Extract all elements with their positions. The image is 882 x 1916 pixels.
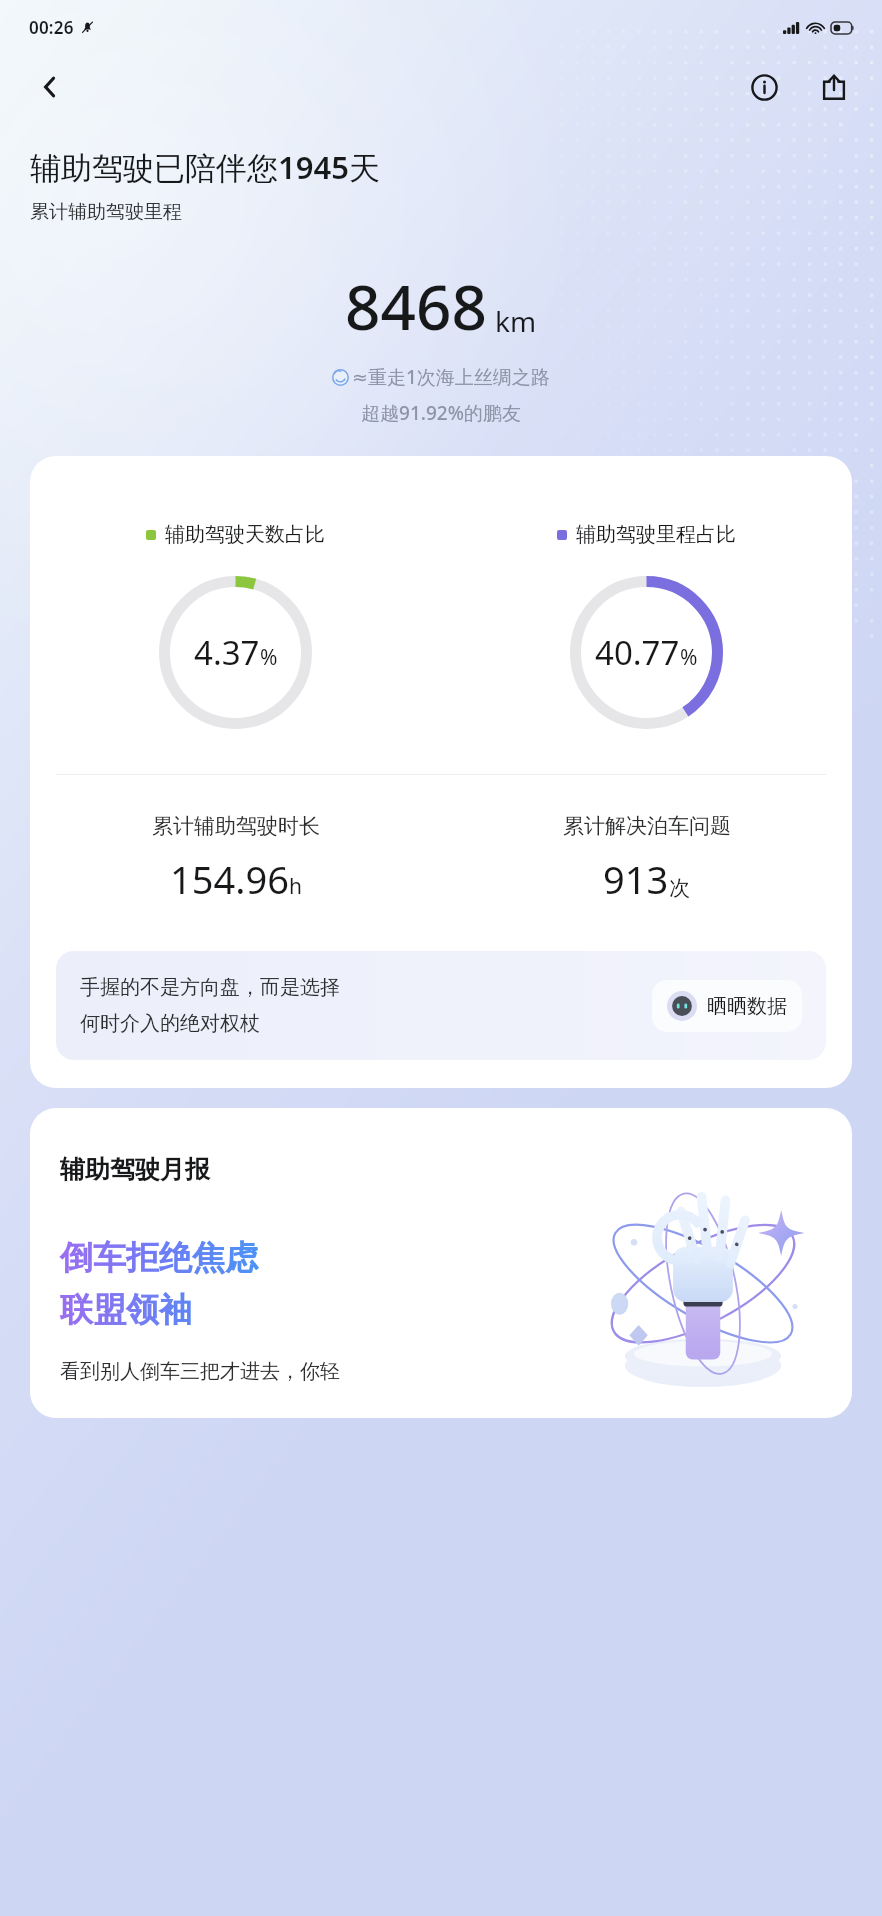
staticText: 次 <box>669 875 690 901</box>
staticText: 何时介入的绝对权杖 <box>80 1011 260 1036</box>
staticText: 00:26 <box>29 16 74 39</box>
staticText: 辅助驾驶月报 <box>60 1154 210 1185</box>
staticText: 40.77 <box>595 630 680 675</box>
staticText: 辅助驾驶里程占比 <box>576 522 736 547</box>
staticText: ≈重走1次海上丝绸之路 <box>352 364 550 390</box>
staticText: 辅助驾驶已陪伴您1945天 <box>30 146 380 188</box>
button[interactable]: 辅助驾驶月报 <box>30 1108 852 1418</box>
staticText: 913 <box>603 853 669 905</box>
staticText: 4.37 <box>194 630 260 675</box>
staticText: 超越91.92%的鹏友 <box>0 400 882 426</box>
staticText: 辅助驾驶天数占比 <box>165 522 325 547</box>
staticText: 累计解决泊车问题 <box>563 813 731 839</box>
staticText: km <box>495 302 537 340</box>
staticText: % <box>680 643 698 672</box>
staticText: h <box>289 872 302 901</box>
staticText: 手握的不是方向盘，而是选择 <box>80 975 340 1000</box>
staticText: 累计辅助驾驶里程 <box>30 200 182 224</box>
button[interactable]: 晒晒数据 <box>652 980 802 1032</box>
button[interactable]: Share <box>810 63 858 111</box>
button[interactable]: Back <box>26 63 74 111</box>
staticText: 晒晒数据 <box>707 994 787 1019</box>
button[interactable]: Info <box>740 63 788 111</box>
staticText: 154.96 <box>170 853 289 905</box>
staticText: 看到别人倒车三把才进去，你轻 <box>60 1359 340 1384</box>
staticText: 累计辅助驾驶时长 <box>152 813 320 839</box>
staticText: 倒车拒绝焦虑 <box>60 1237 258 1279</box>
staticText: % <box>260 643 278 672</box>
staticText: 8468 <box>345 264 487 348</box>
staticText: 联盟领袖 <box>60 1289 192 1331</box>
